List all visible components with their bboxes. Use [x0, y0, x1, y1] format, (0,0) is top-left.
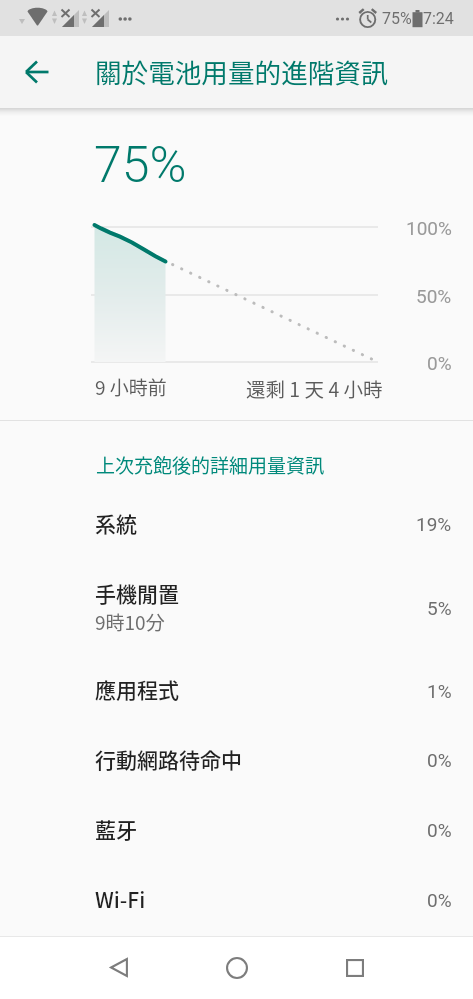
staticText: 0% — [427, 889, 452, 911]
button[interactable]: Back — [60, 936, 178, 999]
staticText: 行動網路待命中 — [95, 744, 242, 774]
staticText: 上次充飽後的詳細用量資訊 — [96, 451, 325, 479]
staticText: 100% — [406, 217, 452, 239]
button[interactable]: 藍牙 — [0, 795, 473, 865]
staticText: 還剩 1 天 4 小時 — [246, 374, 383, 402]
staticText: 9時10分 — [95, 608, 165, 636]
staticText: 1% — [427, 680, 452, 702]
staticText: 9 小時前 — [95, 373, 167, 401]
button[interactable]: 手機閒置 — [0, 559, 473, 656]
staticText: 系統 — [95, 508, 137, 538]
button[interactable]: Wi-Fi — [0, 865, 473, 935]
staticText: Wi-Fi — [95, 884, 146, 914]
button[interactable]: 應用程式 — [0, 656, 473, 725]
staticText: 50% — [416, 285, 452, 307]
button[interactable]: Back — [9, 44, 65, 100]
staticText: 關於電池用量的進階資訊 — [95, 52, 388, 91]
staticText: 7:24 — [423, 9, 454, 28]
staticText: 0% — [427, 352, 452, 374]
staticText: 75% — [94, 136, 187, 195]
button[interactable]: 行動網路待命中 — [0, 725, 473, 795]
button[interactable]: 系統 — [0, 489, 473, 559]
button[interactable]: Recents — [296, 936, 414, 999]
staticText: 0% — [427, 819, 452, 841]
staticText: 0% — [427, 749, 452, 771]
button[interactable]: Home — [178, 936, 295, 999]
staticText: 5% — [427, 597, 452, 619]
staticText: 應用程式 — [95, 674, 179, 704]
staticText: 藍牙 — [95, 814, 137, 844]
staticText: 19% — [416, 513, 452, 535]
staticText: 手機閒置 — [95, 578, 179, 608]
staticText: 75% — [382, 9, 412, 28]
